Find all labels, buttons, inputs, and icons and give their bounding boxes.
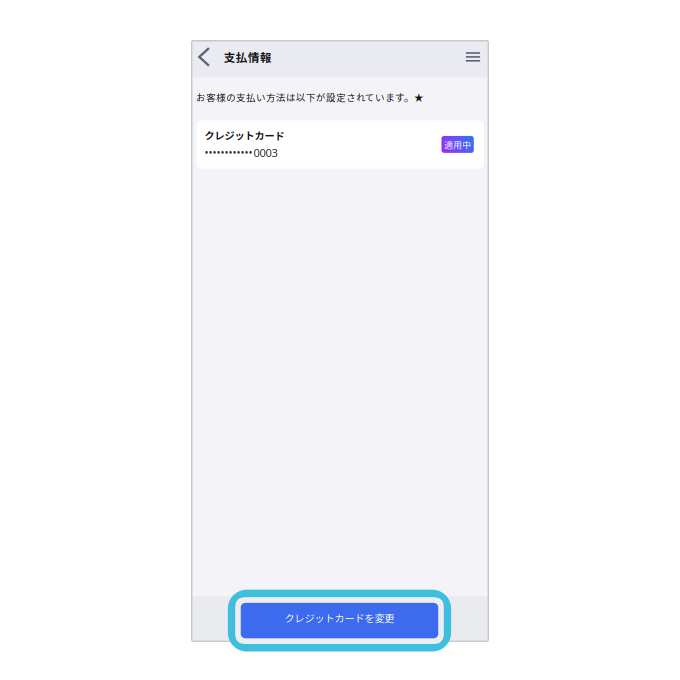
staticText: 適用中 — [444, 138, 471, 151]
button[interactable]: クレジットカード — [197, 120, 484, 168]
button[interactable]: Menu — [463, 41, 483, 77]
staticText: クレジットカードを変更 — [284, 611, 394, 625]
staticText: 0003 — [254, 145, 278, 160]
button[interactable]: クレジットカードを変更 — [219, 581, 459, 661]
staticText: •••••••••••• — [204, 145, 252, 160]
button[interactable]: Back — [195, 41, 213, 77]
staticText: クレジットカード — [204, 128, 284, 142]
staticText: 支払情報 — [224, 48, 272, 65]
staticText: お客様の支払い方法は以下が設定されています。★ — [196, 90, 424, 104]
